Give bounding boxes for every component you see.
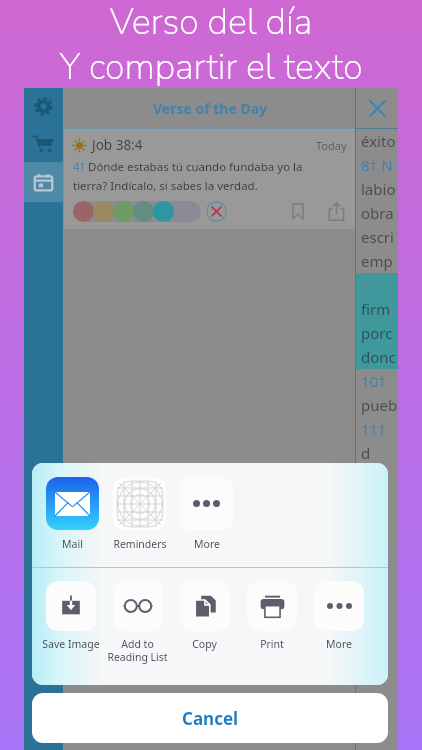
staticText: Print <box>260 637 284 651</box>
staticText: 8† N <box>361 155 393 175</box>
staticText: More <box>326 637 352 651</box>
staticText: More <box>194 537 220 551</box>
staticText: Mail <box>62 537 83 551</box>
button[interactable]: Reminders <box>106 477 173 551</box>
staticText: d <box>361 443 371 463</box>
staticText: Add to Reading List <box>107 637 168 664</box>
button[interactable]: Copy <box>171 581 238 651</box>
staticText: Save Image <box>42 637 100 651</box>
staticText: Verso del día <box>0 0 422 47</box>
button[interactable]: More <box>173 477 240 551</box>
staticText: donc <box>361 347 396 367</box>
staticText: 10† <box>361 371 386 391</box>
staticText: Copy <box>192 637 217 651</box>
staticText: escri <box>361 227 394 247</box>
button[interactable]: More <box>305 581 372 651</box>
button[interactable]: Save Image <box>37 581 104 651</box>
staticText: porc <box>361 323 393 343</box>
staticText: emp <box>361 251 393 271</box>
staticText: Y compartir el texto <box>0 43 422 92</box>
staticText: obra <box>361 203 394 223</box>
staticText: Job 38:4 <box>92 136 143 154</box>
staticText: Cancel <box>182 707 239 730</box>
button[interactable]: Add to Reading List <box>104 581 171 664</box>
staticText: 9† <box>361 275 386 295</box>
staticText: Today <box>316 138 347 153</box>
staticText: Reminders <box>113 537 167 551</box>
staticText: firme <box>361 299 398 319</box>
staticText: 4 <box>73 159 80 175</box>
button[interactable]: Cancel <box>32 693 388 743</box>
button[interactable]: Print <box>238 581 305 651</box>
staticText: rc <box>361 467 375 487</box>
staticText: pueb <box>361 395 398 415</box>
staticText: Verse of the Day <box>153 99 268 118</box>
staticText: labio <box>361 179 396 199</box>
staticText: 11† <box>361 419 386 439</box>
staticText: † <box>80 159 88 173</box>
staticText: Dónde estabas tú cuando fundaba yo la <box>88 159 303 175</box>
staticText: éxito <box>361 131 396 151</box>
button[interactable]: Mail <box>39 477 106 551</box>
staticText: tierra? Indícalo, si sabes la verdad. <box>73 178 258 194</box>
